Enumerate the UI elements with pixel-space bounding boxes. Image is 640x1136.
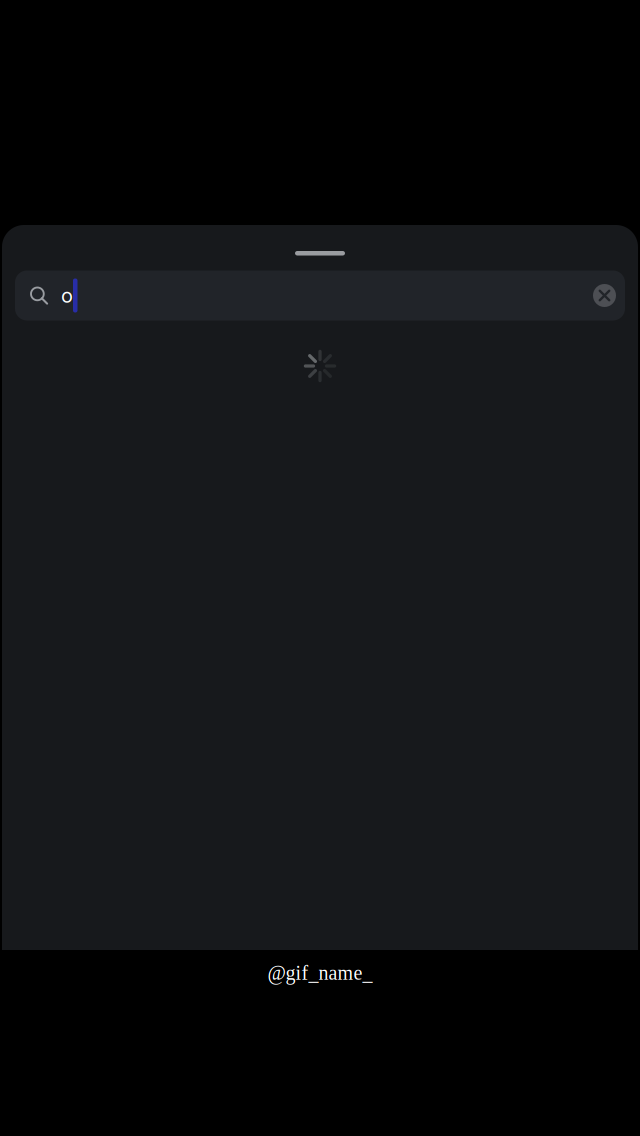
button[interactable]: Clear text	[584, 271, 625, 320]
staticText: o	[61, 283, 73, 308]
staticText: @gif_name_	[267, 962, 372, 984]
button[interactable]: Search GIFs	[15, 270, 625, 320]
button[interactable]: Dismiss	[255, 239, 385, 267]
